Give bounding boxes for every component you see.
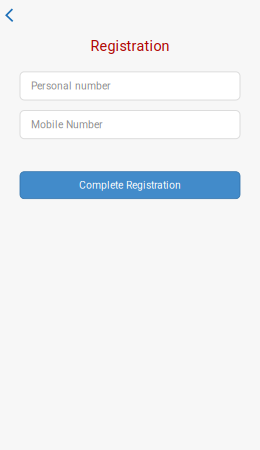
staticText: Registration [90, 38, 169, 54]
staticText: Complete Registration [79, 179, 181, 191]
button[interactable]: Complete Registration [20, 172, 240, 199]
button[interactable]: Personal number [20, 72, 240, 100]
button[interactable]: Mobile Number [20, 110, 240, 139]
staticText: Personal number [31, 80, 111, 92]
button[interactable]: Back [0, 0, 30, 27]
staticText: Mobile Number [31, 118, 103, 131]
